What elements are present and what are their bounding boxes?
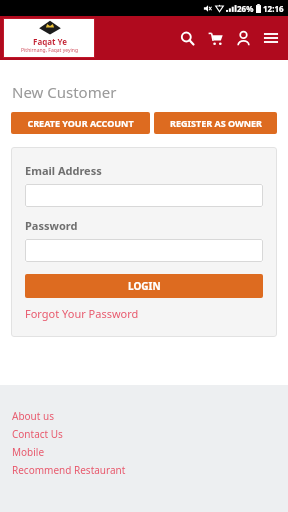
button[interactable]: Recommend Restaurant [12, 461, 126, 479]
staticText: Pithirnang, Faqat yeying [21, 47, 78, 54]
staticText: 12:16 [263, 3, 284, 14]
button[interactable]: Menu [261, 28, 281, 48]
staticText: Faqat Ye [33, 36, 67, 47]
button[interactable]: Cart [205, 28, 225, 48]
button[interactable]: CREATE YOUR ACCOUNT [11, 112, 150, 134]
staticText: Password [25, 218, 78, 233]
staticText: New Customer [12, 82, 117, 102]
button[interactable]: Faqat Ye home [3, 18, 95, 58]
staticText: Recommend Restaurant [12, 463, 126, 477]
staticText: Email Address [25, 163, 102, 178]
staticText: REGISTER AS OWNER [170, 117, 262, 129]
staticText: LOGIN [128, 279, 161, 293]
staticText: Forgot Your Password [25, 306, 139, 321]
staticText: 26% [237, 3, 254, 14]
button[interactable]: LOGIN [25, 274, 263, 298]
button[interactable]: About us [12, 407, 54, 425]
staticText: About us [12, 409, 54, 423]
button[interactable]: Text field [25, 184, 263, 207]
button[interactable]: Account [233, 28, 253, 48]
button[interactable]: Contact Us [12, 425, 63, 443]
button[interactable]: Search [177, 28, 197, 48]
button[interactable]: Text field [25, 239, 263, 262]
button[interactable]: Mobile [12, 443, 45, 461]
staticText: CREATE YOUR ACCOUNT [27, 117, 134, 129]
staticText: Contact Us [12, 427, 63, 441]
button[interactable]: Forgot Your Password [25, 306, 139, 321]
staticText: Mobile [12, 445, 45, 459]
button[interactable]: REGISTER AS OWNER [154, 112, 277, 134]
